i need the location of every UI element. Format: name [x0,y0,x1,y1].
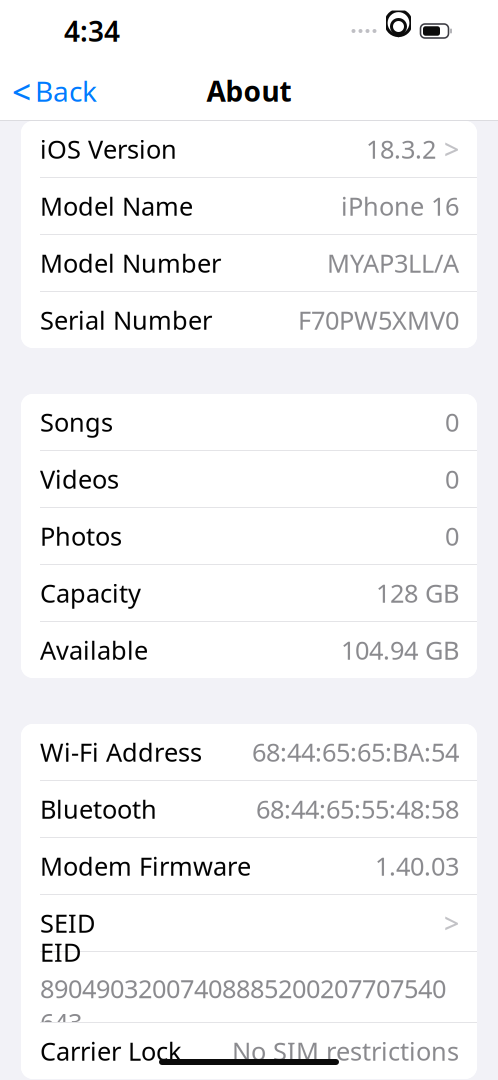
staticText: Capacity [40,576,141,610]
button[interactable]: Modem Firmware [21,838,477,894]
staticText: 128 GB [376,576,459,610]
button[interactable]: Capacity [21,565,477,621]
staticText: MYAP3LL/A [327,246,459,280]
button[interactable]: Model Name [21,178,477,234]
staticText: Modem Firmware [40,849,251,883]
staticText: Bluetooth [40,792,157,826]
staticText: 104.94 GB [341,633,459,667]
staticText: 4:34 [64,12,120,50]
button[interactable]: iOS Version [21,121,477,177]
staticText: Model Name [40,189,193,223]
staticText: SEID [40,906,95,940]
staticText: About [206,72,291,110]
button[interactable]: Carrier Lock [21,1023,477,1079]
staticText: Back [35,72,97,110]
button[interactable]: Songs [21,394,477,450]
button[interactable]: Available [21,622,477,678]
staticText: Songs [40,405,113,439]
staticText: < [12,69,31,113]
staticText: 0 [445,405,459,439]
button[interactable]: Model Number [21,235,477,291]
button[interactable]: < [0,66,107,116]
staticText: > [444,905,459,941]
staticText: Serial Number [40,303,212,337]
staticText: 68:44:65:65:BA:54 [252,735,459,769]
staticText: 0 [445,462,459,496]
staticText: No SIM restrictions [232,1034,459,1068]
staticText: 1.40.03 [375,849,459,883]
staticText: Photos [40,519,122,553]
staticText: 18.3.2 [366,132,436,166]
button[interactable]: Serial Number [21,292,477,348]
staticText: F70PW5XMV0 [298,303,459,337]
button[interactable]: EID [21,952,477,1022]
staticText: > [444,131,459,167]
staticText: Wi-Fi Address [40,735,202,769]
staticText: 68:44:65:55:48:58 [256,792,459,826]
staticText: 0 [445,519,459,553]
staticText: iOS Version [40,132,177,166]
staticText: Carrier Lock [40,1034,182,1068]
button[interactable]: SEID [21,895,477,951]
staticText: iPhone 16 [341,189,459,223]
button[interactable]: Videos [21,451,477,507]
button[interactable]: Wi-Fi Address [21,724,477,780]
staticText: Available [40,633,148,667]
button[interactable]: Bluetooth [21,781,477,837]
staticText: EID [40,935,81,969]
staticText: Videos [40,462,119,496]
staticText: Model Number [40,246,221,280]
staticText: 89049032007408885200207707540643 [40,972,446,1039]
button[interactable]: Photos [21,508,477,564]
